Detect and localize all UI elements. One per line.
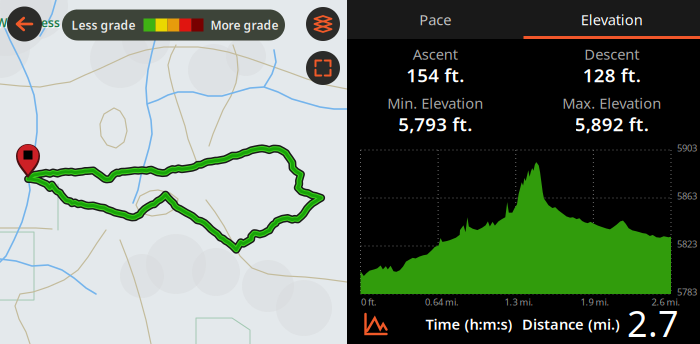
staticText: Descent xyxy=(584,44,639,64)
button[interactable]: Elevation xyxy=(523,0,700,39)
staticText: 154 ft. xyxy=(406,63,464,87)
staticText: 2.7 xyxy=(627,299,679,344)
staticText: Ascent xyxy=(413,44,458,64)
staticText: 5,892 ft. xyxy=(575,112,649,136)
button[interactable]: Full screen xyxy=(306,51,340,85)
staticText: More grade xyxy=(210,17,278,33)
staticText: 0.64 mi. xyxy=(425,296,459,308)
staticText: 2.6 mi. xyxy=(651,296,680,308)
staticText: 1.9 mi. xyxy=(580,296,609,308)
button[interactable]: Back xyxy=(7,6,42,41)
staticText: Less grade xyxy=(71,17,135,33)
staticText: 5823 xyxy=(677,238,697,250)
staticText: Time (h:m:s) xyxy=(425,314,512,334)
staticText: Min. Elevation xyxy=(387,93,483,113)
staticText: 5863 xyxy=(677,190,697,202)
staticText: Wilderness xyxy=(0,15,61,31)
staticText: 0 ft. xyxy=(361,296,377,308)
staticText: 5,793 ft. xyxy=(398,112,472,136)
staticText: 5903 xyxy=(677,142,697,154)
button[interactable]: Pace xyxy=(347,0,523,39)
staticText: Wilderness xyxy=(0,14,60,30)
staticText: 5783 xyxy=(677,286,697,298)
staticText: Max. Elevation xyxy=(562,93,661,113)
staticText: Elevation xyxy=(581,10,643,29)
staticText: 1.3 mi. xyxy=(504,296,533,308)
button[interactable]: Map layers xyxy=(306,7,340,41)
staticText: Pace xyxy=(419,10,451,29)
staticText: Distance (mi.) xyxy=(522,314,620,334)
staticText: 128 ft. xyxy=(583,63,641,87)
